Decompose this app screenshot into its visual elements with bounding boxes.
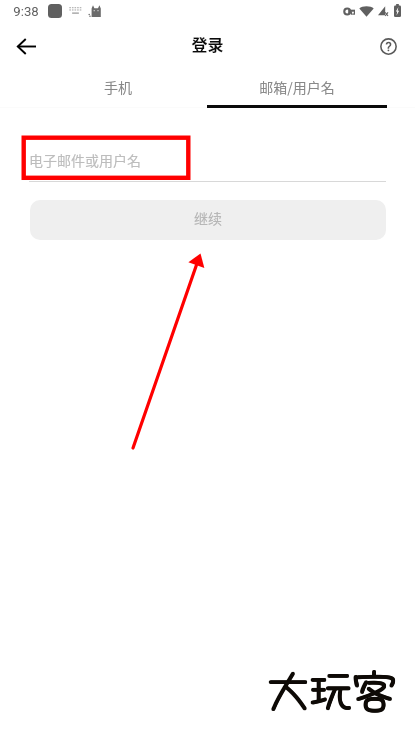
staticText: 大玩客	[267, 655, 396, 717]
staticText: 大玩客	[267, 654, 396, 716]
button[interactable]: Help	[368, 26, 408, 66]
staticText: 邮箱/用户名	[259, 77, 335, 97]
staticText: 电子邮件或用户名	[29, 150, 141, 170]
button[interactable]: 继续	[30, 200, 386, 240]
staticText: 9:38	[13, 4, 39, 19]
staticText: 手机	[104, 77, 132, 97]
staticText: 大玩客	[267, 655, 396, 717]
button[interactable]: 邮箱/用户名	[207, 66, 387, 108]
staticText: ?	[385, 39, 392, 54]
button[interactable]: 电子邮件或用户名	[29, 137, 386, 182]
button[interactable]: Back	[6, 26, 46, 66]
staticText: 大玩客	[266, 655, 395, 717]
button[interactable]: 手机	[28, 66, 207, 108]
staticText: 大玩客	[267, 654, 396, 716]
staticText: 继续	[194, 208, 222, 228]
staticText: 大玩客	[266, 654, 395, 716]
staticText: 登录	[191, 32, 224, 55]
